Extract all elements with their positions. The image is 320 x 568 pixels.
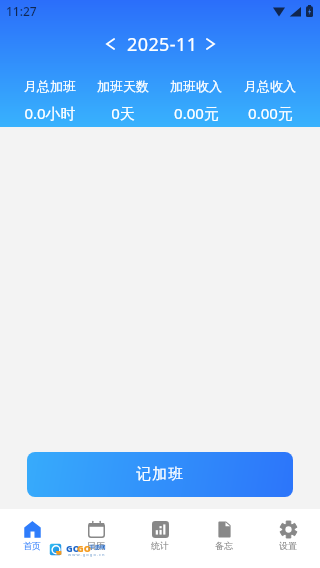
staticText: 统计: [151, 540, 169, 551]
staticText: 0.0小时: [24, 103, 76, 123]
staticText: 加班收入: [170, 78, 222, 94]
staticText: GO: [77, 542, 91, 554]
staticText: 0.00元: [174, 103, 219, 123]
staticText: 日历: [87, 540, 105, 551]
staticText: www.gogo.cn: [68, 552, 106, 557]
staticText: 记加班: [136, 465, 185, 484]
button[interactable]: 日历: [64, 509, 128, 568]
staticText: 0.00元: [248, 103, 293, 123]
staticText: 月总加班: [24, 78, 76, 94]
button[interactable]: 下个月: [199, 33, 221, 55]
staticText: 11:27: [6, 3, 37, 19]
staticText: 0天: [111, 103, 135, 123]
button[interactable]: 首页: [0, 509, 64, 568]
button[interactable]: 记加班: [27, 452, 293, 497]
button[interactable]: 统计: [128, 509, 192, 568]
staticText: 备忘: [215, 540, 233, 551]
staticText: 2025-11: [127, 32, 198, 56]
staticText: 手游网: [89, 544, 106, 551]
button[interactable]: 设置: [256, 509, 320, 568]
button[interactable]: 备忘: [192, 509, 256, 568]
staticText: 加班天数: [97, 78, 149, 94]
staticText: GO: [66, 542, 80, 554]
staticText: 月总收入: [244, 78, 296, 94]
staticText: 设置: [279, 540, 297, 551]
staticText: 首页: [23, 540, 41, 551]
button[interactable]: 上个月: [99, 33, 121, 55]
